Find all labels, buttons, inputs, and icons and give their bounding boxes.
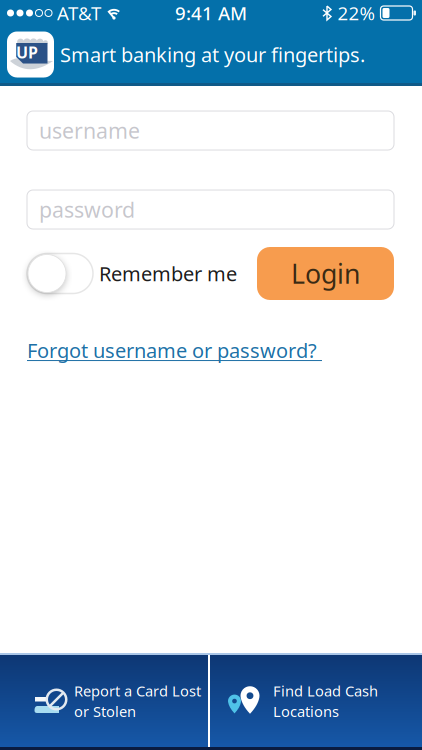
staticText: 22% bbox=[337, 1, 375, 25]
button[interactable]: Report a Card Lost bbox=[0, 655, 209, 747]
staticText: Report a Card Lost bbox=[74, 681, 201, 700]
button[interactable]: Forgot username or password? bbox=[27, 337, 322, 364]
button[interactable]: password bbox=[27, 190, 394, 229]
staticText: Locations bbox=[273, 701, 339, 721]
button[interactable]: Remember me bbox=[27, 253, 93, 293]
button[interactable]: Login bbox=[257, 247, 394, 300]
staticText: UP bbox=[16, 42, 38, 63]
staticText: 9:41 AM bbox=[175, 1, 247, 25]
staticText: or Stolen bbox=[74, 701, 136, 721]
staticText: Find Load Cash bbox=[273, 681, 378, 700]
staticText: Remember me bbox=[99, 260, 237, 287]
button[interactable]: Find Load Cash bbox=[209, 655, 422, 747]
staticText: Login bbox=[291, 256, 360, 291]
button[interactable]: username bbox=[27, 111, 394, 150]
staticText: Forgot username or password? bbox=[27, 337, 322, 364]
staticText: password bbox=[39, 195, 135, 224]
staticText: username bbox=[39, 116, 140, 145]
staticText: AT&T bbox=[57, 1, 101, 25]
staticText: Smart banking at your fingertips. bbox=[60, 41, 365, 68]
